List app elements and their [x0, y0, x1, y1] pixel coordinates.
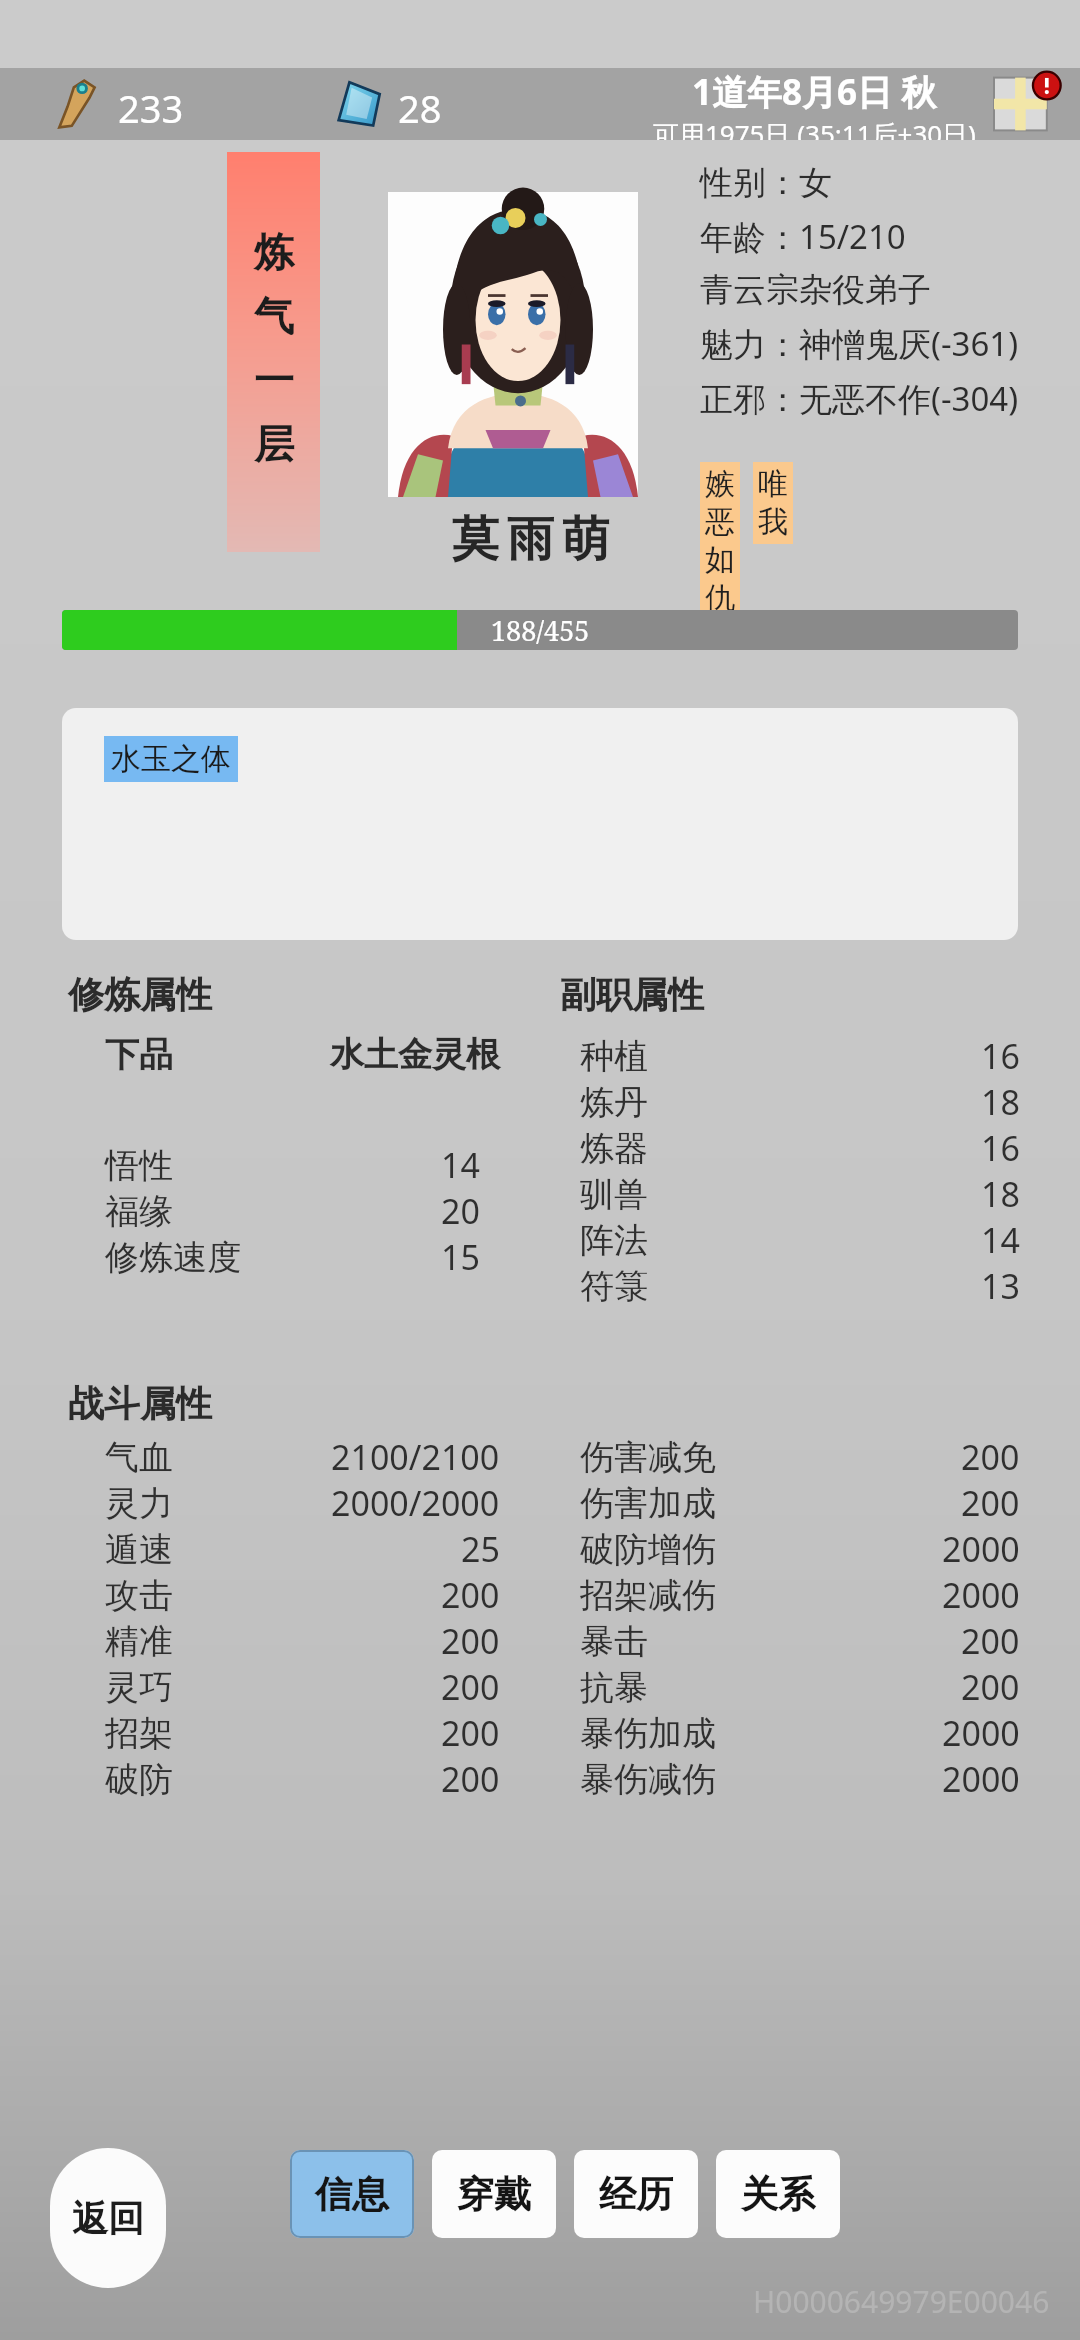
button[interactable]: 伤害加成	[580, 1480, 1020, 1526]
staticText: 灵力	[105, 1482, 173, 1525]
staticText: 2000	[942, 1710, 1020, 1756]
button[interactable]: 188/455	[62, 610, 1018, 650]
staticText: 一	[254, 355, 294, 405]
staticText: 14	[441, 1142, 480, 1188]
staticText: 遁速	[105, 1528, 173, 1571]
staticText: 18	[981, 1079, 1020, 1125]
staticText: 200	[961, 1434, 1020, 1480]
staticText: 可用1975日 (35:11后+30日)	[653, 116, 976, 140]
button[interactable]: 信息	[290, 2150, 414, 2238]
button[interactable]: 遁速	[105, 1526, 500, 1572]
button[interactable]: 返回	[50, 2148, 166, 2288]
button[interactable]: 炼丹	[580, 1079, 1020, 1125]
button[interactable]: 悟性	[105, 1142, 480, 1188]
staticText: 我	[758, 503, 788, 541]
staticText: 种植	[580, 1035, 648, 1078]
staticText: 25	[461, 1526, 500, 1572]
button[interactable]: 关系	[716, 2150, 840, 2238]
button[interactable]: 水玉之体	[62, 708, 1018, 940]
button[interactable]: 水玉之体	[111, 740, 231, 778]
button[interactable]: 福缘	[105, 1188, 480, 1234]
staticText: 招架	[105, 1712, 173, 1755]
button[interactable]: 青云宗杂役弟子	[700, 269, 931, 311]
staticText: 抗暴	[580, 1666, 648, 1709]
button[interactable]: Wood resource	[52, 78, 104, 130]
staticText: 2000	[942, 1526, 1020, 1572]
staticText: 200	[441, 1572, 500, 1618]
staticText: 水玉之体	[111, 740, 231, 778]
button[interactable]: 种植	[580, 1033, 1020, 1079]
button[interactable]: Spirit stone	[330, 78, 384, 132]
staticText: 伤害减免	[580, 1436, 716, 1479]
staticText: 正邪：无恶不作(-304)	[700, 376, 1019, 421]
staticText: 如	[705, 541, 735, 579]
staticText: 16	[981, 1033, 1020, 1079]
button[interactable]: 修炼速度	[105, 1234, 480, 1280]
button[interactable]	[388, 192, 638, 497]
button[interactable]: 暴伤减伤	[580, 1756, 1020, 1802]
button[interactable]: 伤害减免	[580, 1434, 1020, 1480]
staticText: 18	[981, 1171, 1020, 1217]
button[interactable]: 破防增伤	[580, 1526, 1020, 1572]
button[interactable]: 性别：女	[700, 162, 832, 204]
staticText: 信息	[315, 2171, 389, 2218]
button[interactable]: 暴伤加成	[580, 1710, 1020, 1756]
button[interactable]: 炼	[227, 152, 320, 552]
staticText: 200	[441, 1664, 500, 1710]
staticText: 13	[981, 1263, 1020, 1309]
button[interactable]: 唯	[758, 465, 788, 541]
button[interactable]: 嫉	[705, 465, 735, 617]
button[interactable]: 下品	[105, 1033, 500, 1076]
staticText: H0000649979E00046	[753, 2281, 1050, 2322]
button[interactable]: 气血	[105, 1434, 500, 1480]
button[interactable]: 正邪：无恶不作(-304)	[700, 376, 1019, 421]
staticText: 莫雨萌	[448, 510, 613, 569]
button[interactable]: 符箓	[580, 1263, 1020, 1309]
button[interactable]: 年龄：15/210	[700, 214, 906, 259]
staticText: 炼器	[580, 1127, 648, 1170]
staticText: 暴伤加成	[580, 1712, 716, 1755]
staticText: 14	[981, 1217, 1020, 1263]
staticText: 28	[398, 82, 442, 134]
button[interactable]: 抗暴	[580, 1664, 1020, 1710]
staticText: 气	[254, 291, 294, 341]
staticText: 破防	[105, 1758, 173, 1801]
staticText: 233	[118, 82, 184, 134]
button[interactable]: 招架减伤	[580, 1572, 1020, 1618]
staticText: 关系	[741, 2171, 815, 2218]
staticText: 200	[961, 1480, 1020, 1526]
button[interactable]: 魅力：神憎鬼厌(-361)	[700, 321, 1019, 366]
staticText: 招架减伤	[580, 1574, 716, 1617]
staticText: 福缘	[105, 1190, 173, 1233]
staticText: 暴击	[580, 1620, 648, 1663]
button[interactable]: 破防	[105, 1756, 500, 1802]
button[interactable]: 穿戴	[432, 2150, 556, 2238]
button[interactable]: 攻击	[105, 1572, 500, 1618]
staticText: 经历	[599, 2171, 673, 2218]
button[interactable]: 招架	[105, 1710, 500, 1756]
staticText: 1道年8月6日 秋	[692, 68, 937, 116]
staticText: 修炼速度	[105, 1236, 241, 1279]
button[interactable]: 精准	[105, 1618, 500, 1664]
button[interactable]: 经历	[574, 2150, 698, 2238]
staticText: 层	[254, 419, 294, 469]
staticText: 2000/2000	[331, 1480, 500, 1526]
button[interactable]: 驯兽	[580, 1171, 1020, 1217]
staticText: 20	[441, 1188, 480, 1234]
staticText: 穿戴	[457, 2171, 531, 2218]
button[interactable]: 灵力	[105, 1480, 500, 1526]
staticText: 精准	[105, 1620, 173, 1663]
button[interactable]: 炼器	[580, 1125, 1020, 1171]
staticText: 灵巧	[105, 1666, 173, 1709]
staticText: 气血	[105, 1436, 173, 1479]
staticText: 2000	[942, 1572, 1020, 1618]
staticText: 188/455	[491, 612, 590, 649]
staticText: 2100/2100	[331, 1434, 500, 1480]
staticText: 16	[981, 1125, 1020, 1171]
button[interactable]: 灵巧	[105, 1664, 500, 1710]
staticText: 伤害加成	[580, 1482, 716, 1525]
button[interactable]: 暴击	[580, 1618, 1020, 1664]
button[interactable]: 阵法	[580, 1217, 1020, 1263]
staticText: 200	[441, 1710, 500, 1756]
button[interactable]: Gift rewards	[994, 71, 1060, 137]
